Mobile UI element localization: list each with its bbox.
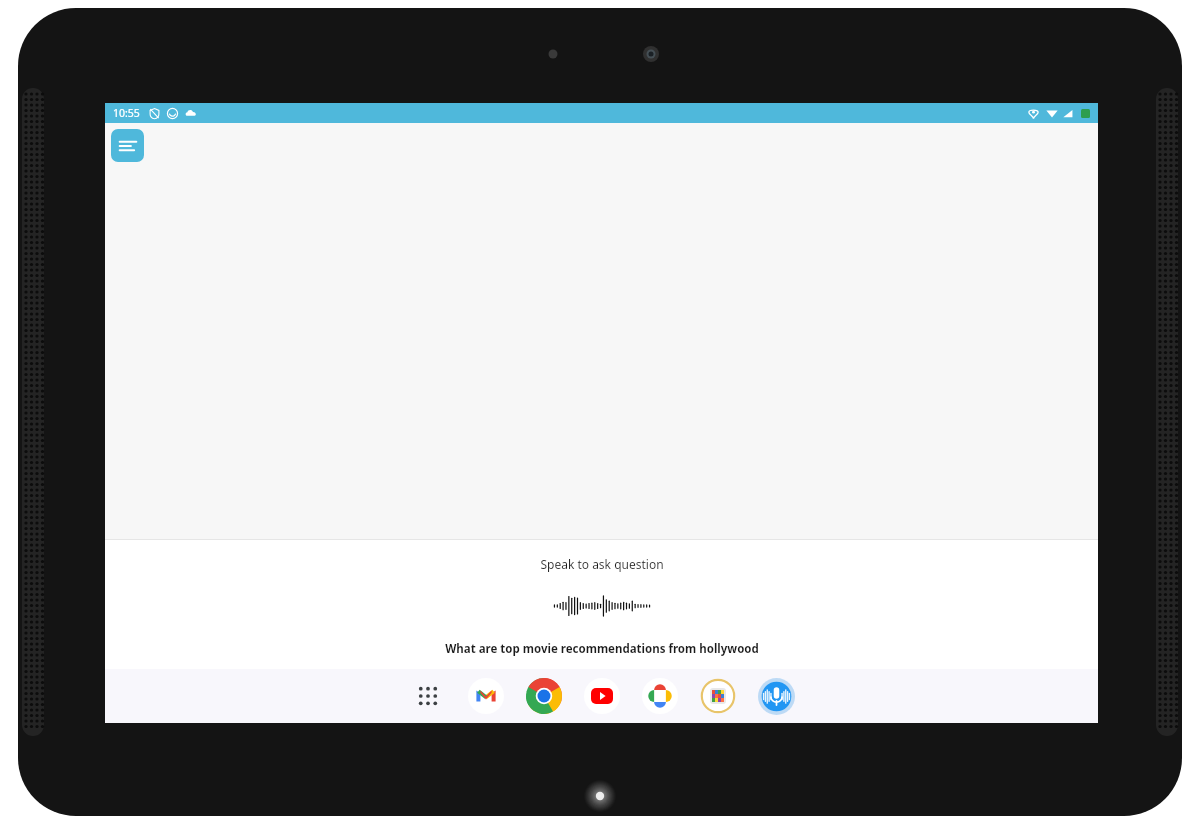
button[interactable]: Menu (111, 129, 144, 162)
staticText: 10:55 (113, 106, 140, 120)
button[interactable]: YouTube (582, 676, 622, 716)
button[interactable]: Chrome (524, 676, 564, 716)
button[interactable]: Gmail (466, 676, 506, 716)
staticText: What are top movie recommendations from … (445, 641, 759, 657)
button[interactable]: Voice search (756, 676, 796, 716)
staticText: Speak to ask question (540, 556, 664, 572)
button[interactable]: All apps (408, 676, 448, 716)
button[interactable]: Gallery (698, 676, 738, 716)
button[interactable]: Photos (640, 676, 680, 716)
